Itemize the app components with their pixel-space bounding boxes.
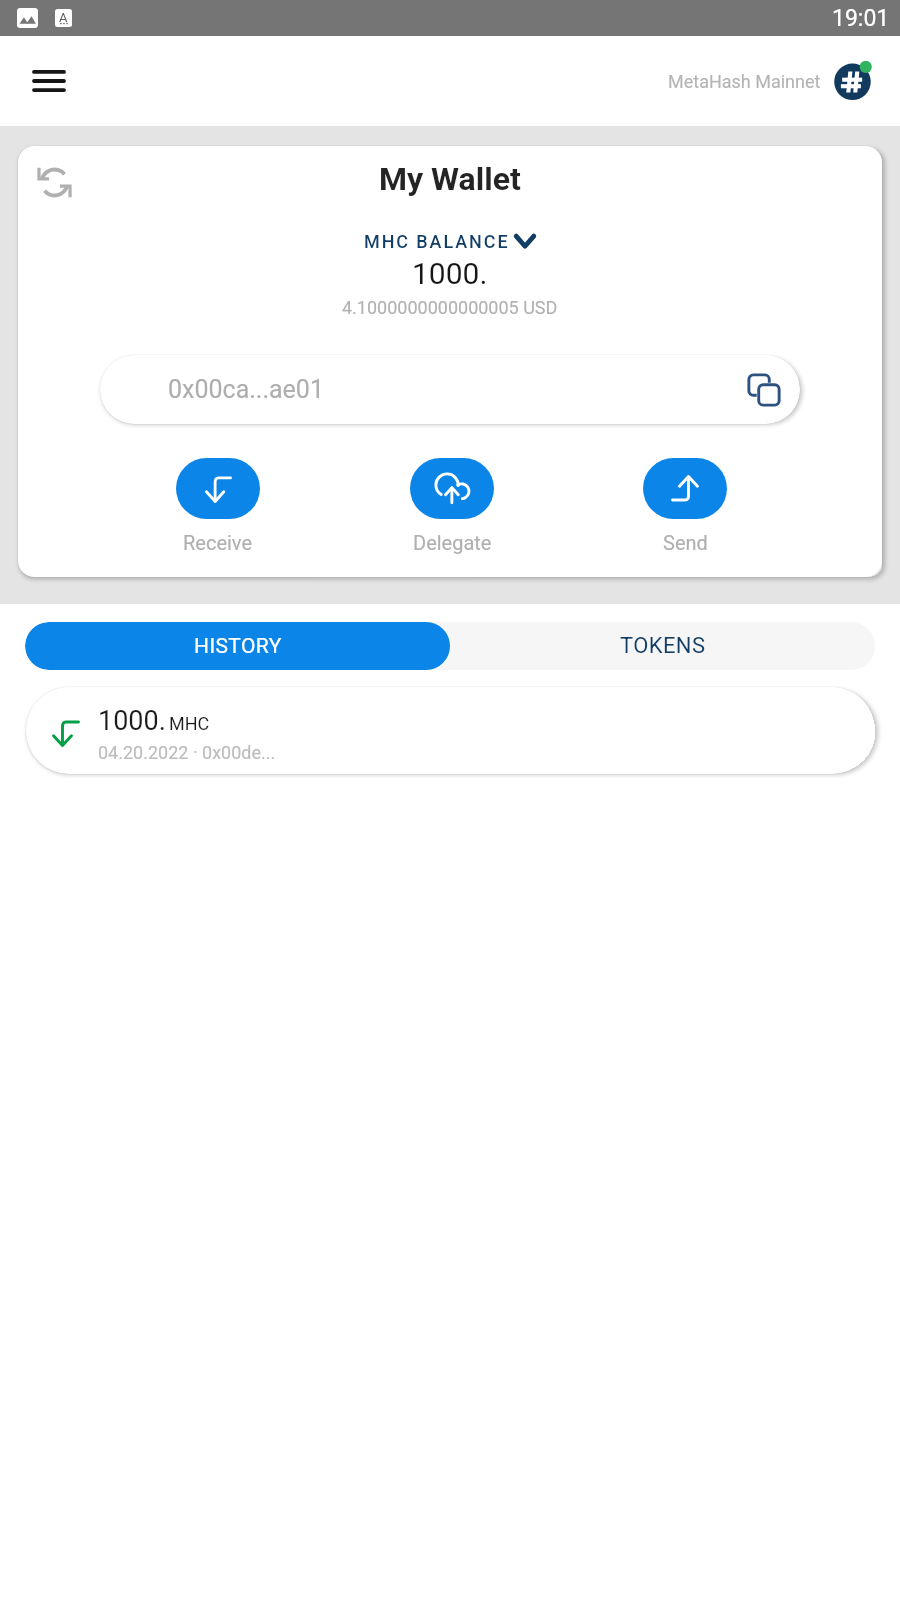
staticText: 1000.	[98, 705, 166, 737]
button[interactable]: Receive	[143, 458, 293, 554]
button[interactable]: Menu	[18, 50, 80, 112]
button[interactable]: MetaHash Mainnet	[668, 60, 876, 102]
button[interactable]: Refresh	[24, 152, 84, 212]
button[interactable]: TOKENS	[450, 622, 875, 670]
staticText: 1000.	[412, 256, 488, 291]
button[interactable]: 0x00ca...ae01	[100, 355, 800, 424]
staticText: HISTORY	[194, 634, 282, 659]
button[interactable]: HISTORY	[25, 622, 450, 670]
button[interactable]: Send	[610, 458, 760, 554]
staticText: Receive	[183, 531, 253, 554]
button[interactable]: Delegate	[377, 458, 527, 554]
button[interactable]: Copy address	[736, 362, 792, 418]
staticText: 0x00ca...ae01	[168, 375, 324, 404]
staticText: MHC	[169, 713, 210, 734]
staticText: Send	[663, 531, 708, 554]
button[interactable]: MHC BALANCE	[364, 231, 536, 252]
staticText: My Wallet	[379, 160, 521, 198]
staticText: 19:01	[832, 5, 890, 32]
button[interactable]: 1000.	[26, 687, 875, 774]
staticText: MHC BALANCE	[364, 231, 510, 252]
staticText: 4.1000000000000005 USD	[342, 297, 558, 318]
staticText: MetaHash Mainnet	[668, 71, 821, 92]
staticText: 04.20.2022 · 0x00de...	[98, 742, 276, 763]
staticText: TOKENS	[620, 633, 706, 659]
staticText: A	[59, 10, 68, 25]
staticText: Delegate	[413, 531, 492, 554]
